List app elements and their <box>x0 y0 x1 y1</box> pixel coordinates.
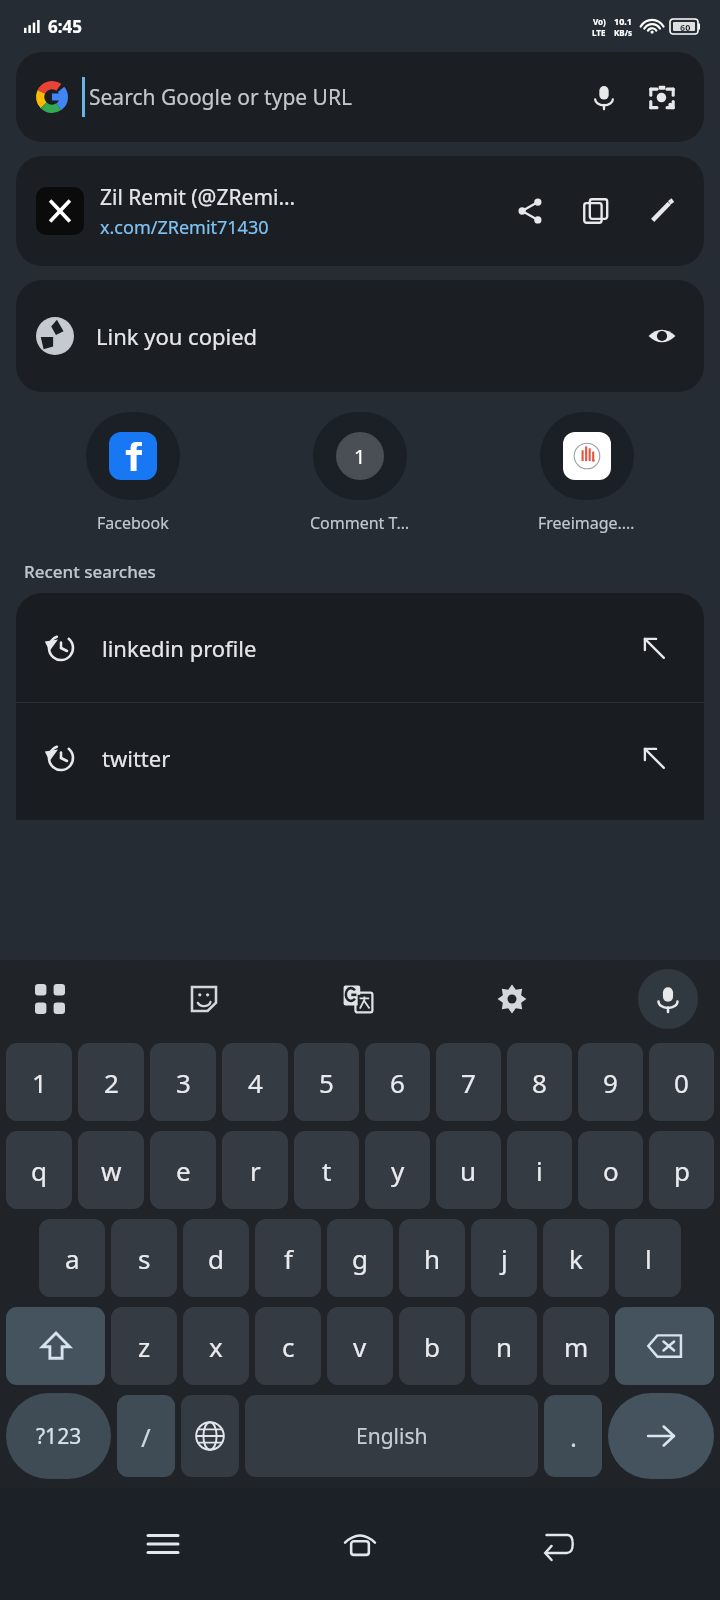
button[interactable]: Link you copied <box>16 280 704 392</box>
button[interactable]: 1 <box>246 408 473 538</box>
button[interactable]: Voice search <box>582 75 626 119</box>
staticText: e <box>176 1153 191 1188</box>
staticText: r <box>250 1153 261 1188</box>
button[interactable]: 4 <box>222 1043 288 1121</box>
button[interactable]: Edit <box>640 189 684 233</box>
button[interactable]: Settings <box>484 971 540 1027</box>
button[interactable]: / <box>117 1395 175 1477</box>
button[interactable]: twitter <box>16 703 704 812</box>
staticText: 1 <box>32 1065 47 1100</box>
staticText: LTE <box>592 27 606 38</box>
staticText: g <box>352 1241 368 1276</box>
button[interactable]: 2 <box>78 1043 144 1121</box>
button[interactable]: e <box>150 1131 216 1209</box>
button[interactable]: 8 <box>507 1043 572 1121</box>
staticText: d <box>208 1241 224 1276</box>
button[interactable]: Show link <box>640 314 684 358</box>
button[interactable]: Share <box>508 189 552 233</box>
button[interactable]: m <box>543 1307 609 1385</box>
button[interactable]: Shift <box>6 1307 105 1385</box>
button[interactable]: y <box>365 1131 430 1209</box>
staticText: English <box>356 1422 428 1451</box>
button[interactable]: 1 <box>6 1043 72 1121</box>
staticText: Link you copied <box>96 321 640 351</box>
button[interactable]: d <box>183 1219 249 1297</box>
button[interactable]: Stickers <box>176 971 232 1027</box>
button[interactable]: Menu <box>22 971 78 1027</box>
button[interactable]: linkedin profile <box>16 593 704 702</box>
button[interactable]: r <box>222 1131 288 1209</box>
staticText: Facebook <box>97 512 169 534</box>
staticText: 6:45 <box>48 15 82 38</box>
staticText: Search Google or type URL <box>89 83 582 112</box>
button[interactable]: 0 <box>649 1043 714 1121</box>
button[interactable]: Home <box>325 1509 395 1579</box>
staticText: b <box>424 1329 440 1364</box>
staticText: KB/s <box>614 27 632 38</box>
button[interactable]: Freeimage.… <box>473 408 700 538</box>
staticText: o <box>603 1153 619 1188</box>
button[interactable]: Zil Remit (@ZRemi… <box>16 156 704 266</box>
staticText: 5 <box>319 1065 334 1100</box>
button[interactable]: Change language <box>181 1395 239 1477</box>
staticText: . <box>570 1419 577 1454</box>
button[interactable]: n <box>471 1307 537 1385</box>
button[interactable]: p <box>649 1131 714 1209</box>
staticText: s <box>138 1241 151 1276</box>
button[interactable]: q <box>6 1131 72 1209</box>
button[interactable]: Insert twitter <box>634 738 674 778</box>
button[interactable]: j <box>471 1219 537 1297</box>
staticText: 10.1 <box>614 15 632 27</box>
staticText: q <box>31 1153 47 1188</box>
button[interactable]: z <box>111 1307 177 1385</box>
button[interactable]: Search Google or type URL <box>16 52 704 142</box>
button[interactable]: 3 <box>150 1043 216 1121</box>
button[interactable]: Translate <box>330 971 386 1027</box>
button[interactable]: x <box>183 1307 249 1385</box>
staticText: twitter <box>102 743 634 773</box>
button[interactable]: Enter <box>608 1393 714 1479</box>
button[interactable]: f <box>255 1219 321 1297</box>
button[interactable]: i <box>507 1131 572 1209</box>
button[interactable]: ?123 <box>6 1393 111 1479</box>
staticText: ?123 <box>36 1422 82 1451</box>
staticText: i <box>536 1153 543 1188</box>
button[interactable]: 5 <box>294 1043 359 1121</box>
button[interactable]: w <box>78 1131 144 1209</box>
staticText: m <box>564 1329 589 1364</box>
staticText: 1 <box>354 443 366 470</box>
staticText: 4 <box>248 1065 263 1100</box>
button[interactable]: Backspace <box>615 1307 714 1385</box>
button[interactable]: c <box>255 1307 321 1385</box>
staticText: Freeimage.… <box>538 512 635 534</box>
button[interactable]: b <box>399 1307 465 1385</box>
button[interactable]: k <box>543 1219 609 1297</box>
button[interactable]: Voice input <box>638 969 698 1029</box>
button[interactable]: 9 <box>578 1043 643 1121</box>
button[interactable]: s <box>111 1219 177 1297</box>
button[interactable]: 6 <box>365 1043 430 1121</box>
button[interactable]: u <box>436 1131 501 1209</box>
button[interactable]: Google Lens <box>640 75 684 119</box>
button[interactable]: Insert linkedin profile <box>634 628 674 668</box>
staticText: v <box>353 1329 367 1364</box>
button[interactable]: Facebook <box>20 408 246 538</box>
staticText: 6 <box>390 1065 405 1100</box>
button[interactable]: Copy <box>574 189 618 233</box>
staticText: u <box>460 1153 477 1188</box>
button[interactable]: g <box>327 1219 393 1297</box>
button[interactable]: Back <box>523 1509 593 1579</box>
button[interactable]: t <box>294 1131 359 1209</box>
button[interactable]: h <box>399 1219 465 1297</box>
button[interactable]: a <box>39 1219 105 1297</box>
staticText: x.com/ZRemit71430 <box>100 215 269 240</box>
button[interactable]: English <box>245 1395 538 1477</box>
staticText: / <box>141 1419 151 1454</box>
button[interactable]: 7 <box>436 1043 501 1121</box>
staticText: l <box>645 1241 652 1276</box>
button[interactable]: v <box>327 1307 393 1385</box>
button[interactable]: Recents <box>128 1509 198 1579</box>
button[interactable]: . <box>544 1395 602 1477</box>
button[interactable]: o <box>578 1131 643 1209</box>
button[interactable]: l <box>615 1219 681 1297</box>
